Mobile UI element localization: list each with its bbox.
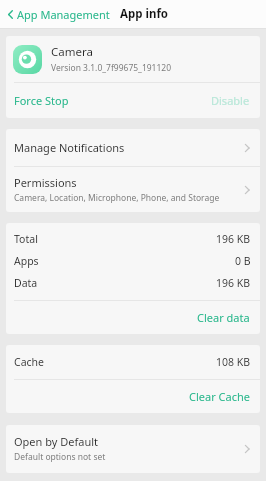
staticText: Disable — [211, 93, 250, 108]
staticText: Default options not set — [14, 451, 106, 463]
staticText: 0 B — [235, 254, 251, 268]
staticText: App Management — [17, 7, 110, 22]
staticText: Data — [14, 276, 38, 290]
staticText: 196 KB — [216, 276, 251, 290]
staticText: Camera — [51, 44, 93, 60]
staticText: Force Stop — [14, 93, 69, 108]
staticText: Total — [14, 232, 38, 246]
staticText: 108 KB — [216, 355, 251, 369]
button[interactable]: Clear Cache — [6, 380, 260, 413]
button[interactable]: Back to App Management — [0, 3, 114, 26]
staticText: Camera, Location, Microphone, Phone, and… — [14, 192, 220, 204]
staticText: 196 KB — [216, 232, 251, 246]
button[interactable]: Disable — [211, 83, 260, 118]
staticText: Open by Default — [14, 434, 99, 449]
staticText: Cache — [14, 355, 44, 369]
button[interactable]: Force Stop — [6, 83, 211, 118]
button[interactable]: Camera — [6, 36, 260, 82]
staticText: Clear Cache — [189, 389, 250, 404]
button[interactable]: Clear data — [6, 301, 260, 334]
staticText: App info — [120, 6, 169, 22]
staticText: Manage Notifications — [14, 140, 242, 155]
staticText: Apps — [14, 254, 39, 268]
button[interactable]: Permissions — [6, 167, 260, 212]
button[interactable]: Manage Notifications — [6, 129, 260, 166]
button[interactable]: Open by Default — [6, 425, 260, 473]
staticText: Clear data — [197, 310, 250, 325]
staticText: Permissions — [14, 175, 77, 190]
staticText: Version 3.1.0_7f99675_191120 — [51, 62, 172, 74]
